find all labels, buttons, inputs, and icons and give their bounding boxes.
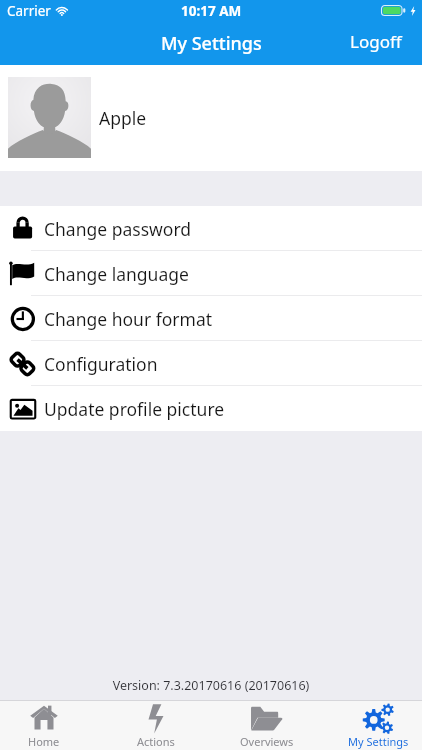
button[interactable]: Logoff — [337, 21, 422, 65]
staticText: Version: 7.3.20170616 (20170616) — [0, 677, 422, 694]
button[interactable]: Change hour format — [0, 296, 422, 341]
button[interactable]: My Settings — [335, 701, 422, 750]
staticText: Change hour format — [44, 307, 213, 331]
button[interactable]: Configuration — [0, 341, 422, 386]
button[interactable]: Change password — [0, 206, 422, 251]
button[interactable]: Change language — [0, 251, 422, 296]
staticText: Home — [28, 734, 60, 749]
staticText: My Settings — [161, 31, 262, 56]
staticText: Update profile picture — [44, 397, 225, 421]
staticText: Logoff — [350, 30, 402, 53]
button[interactable]: Profile: Apple — [0, 65, 422, 171]
staticText: Change language — [44, 262, 189, 286]
staticText: Carrier — [7, 2, 51, 20]
staticText: 10:17 AM — [181, 2, 242, 20]
staticText: Actions — [137, 734, 175, 749]
staticText: Apple — [99, 106, 147, 130]
staticText: Configuration — [44, 352, 158, 376]
button[interactable]: Update profile picture — [0, 386, 422, 431]
button[interactable]: Overviews — [223, 701, 310, 750]
staticText: My Settings — [348, 734, 409, 749]
staticText: Overviews — [240, 734, 294, 749]
button[interactable]: Actions — [112, 701, 199, 750]
staticText: Change password — [44, 217, 192, 241]
button[interactable]: Home — [0, 701, 87, 750]
